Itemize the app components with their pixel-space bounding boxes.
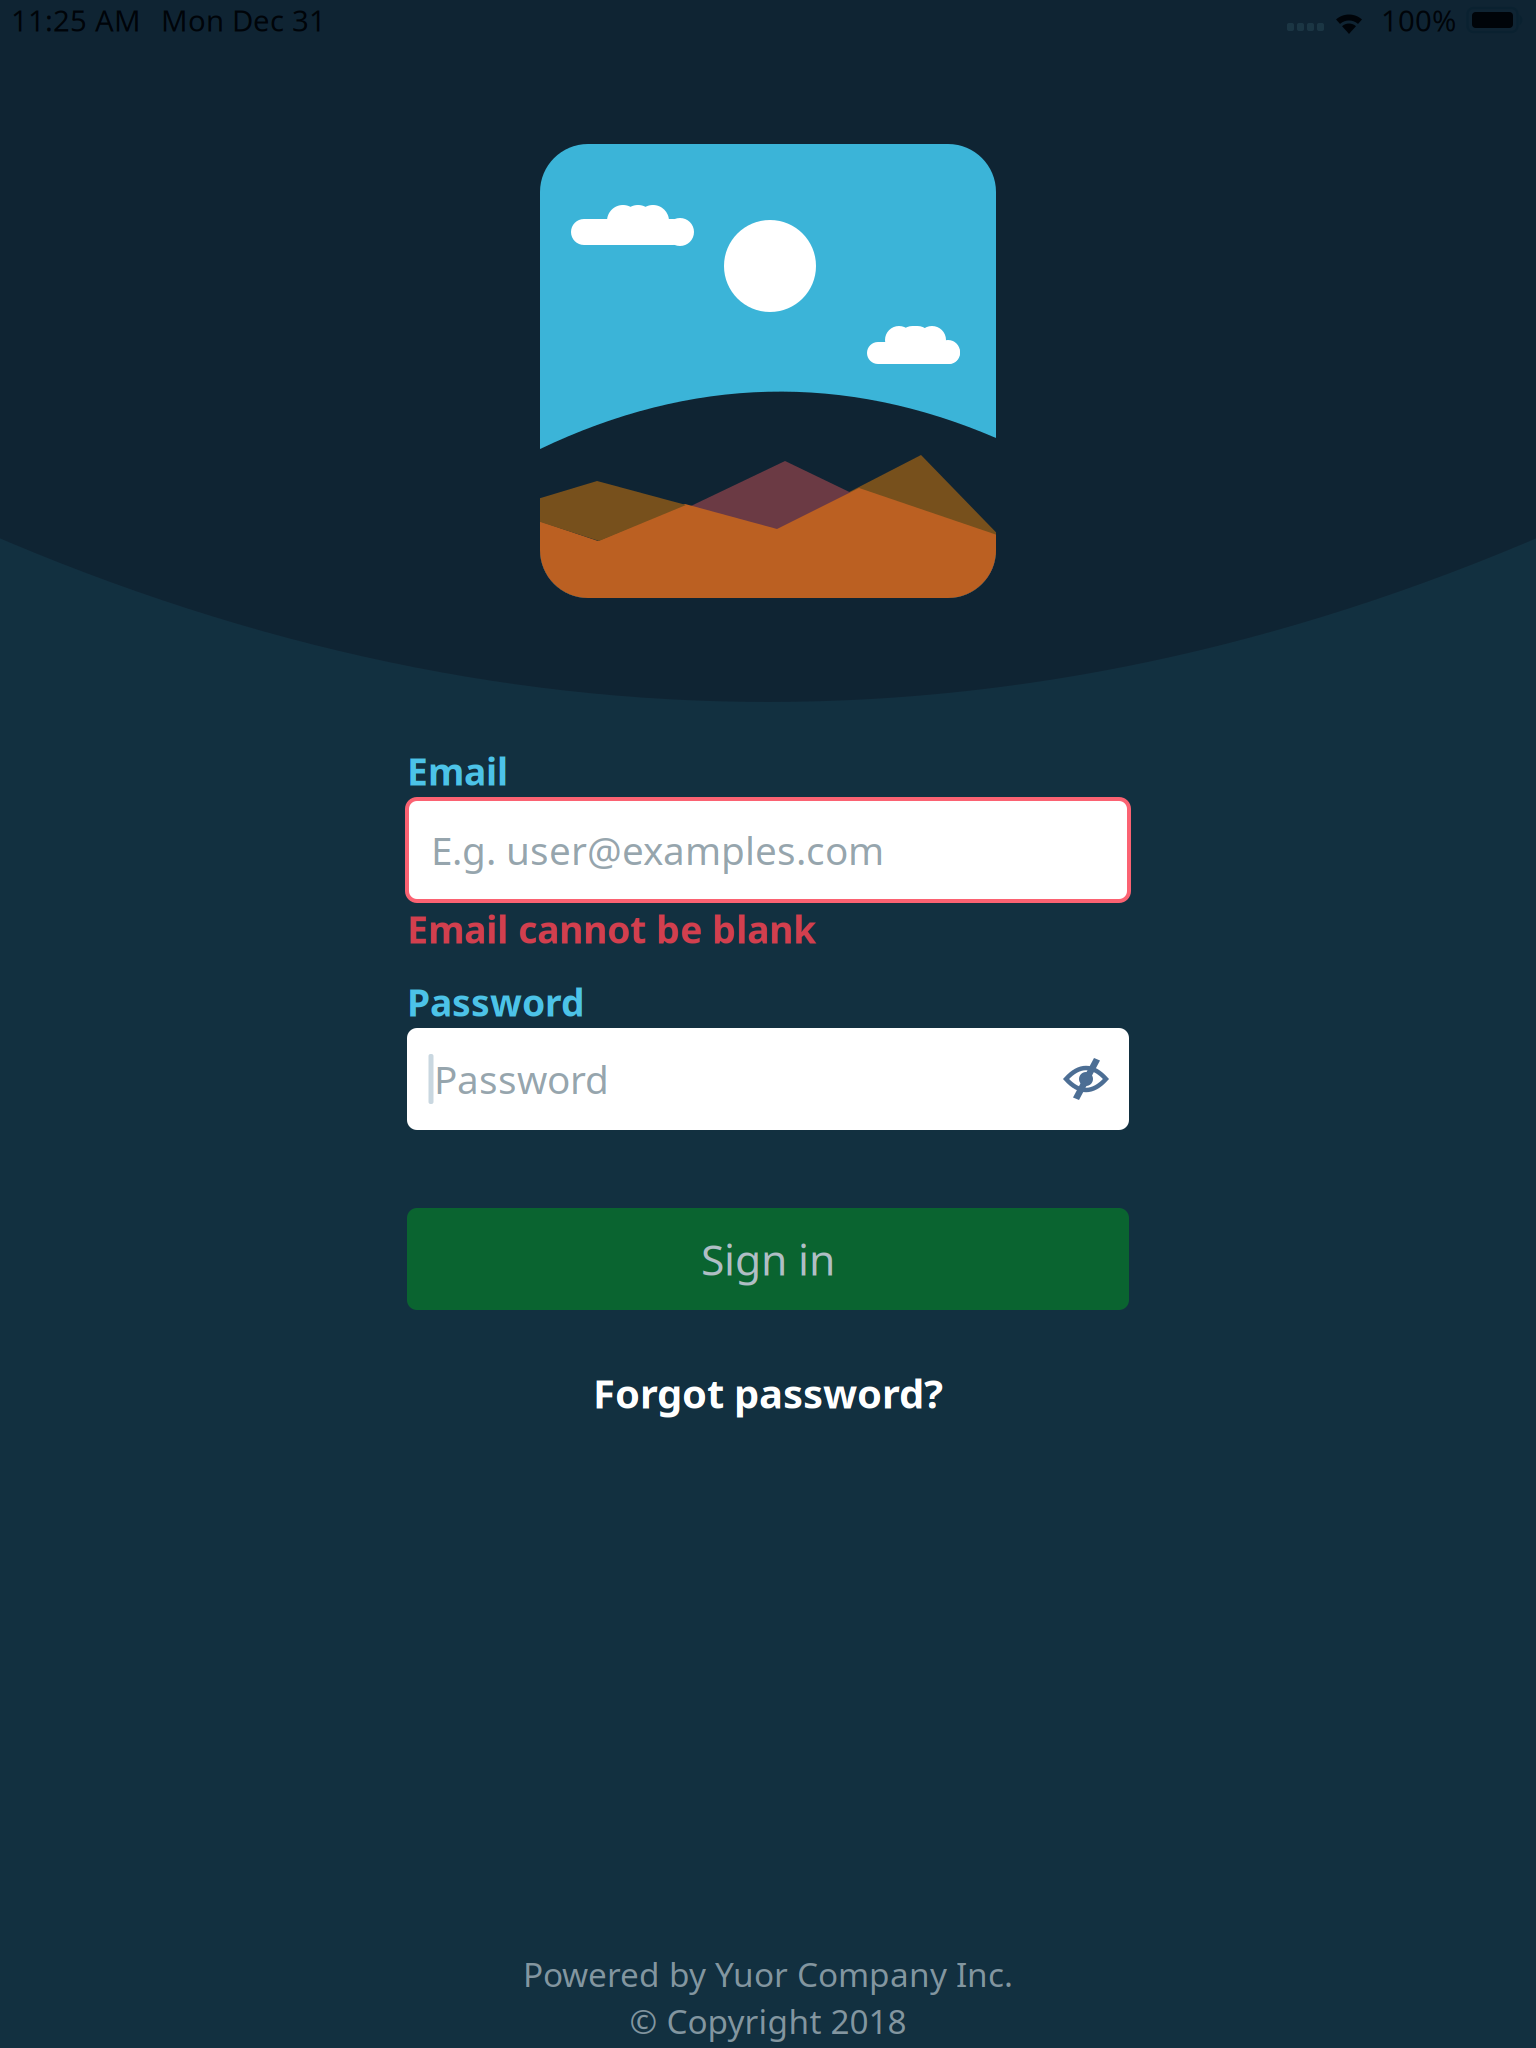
- staticText: Sign in: [701, 1231, 835, 1287]
- staticText: Forgot password?: [593, 1366, 943, 1419]
- staticText: Powered by Yuor Company Inc.: [523, 1952, 1013, 1996]
- staticText: Password: [434, 1053, 609, 1105]
- staticText: Password: [407, 977, 585, 1027]
- staticText: E.g. user@examples.com: [431, 824, 884, 876]
- button[interactable]: Sign in: [407, 1208, 1129, 1310]
- staticText: Email cannot be blank: [407, 904, 816, 954]
- staticText: © Copyright 2018: [629, 1999, 906, 2043]
- button[interactable]: Show password: [1060, 1055, 1112, 1103]
- button[interactable]: Forgot password?: [407, 1359, 1129, 1427]
- staticText: 11:25 AM: [11, 0, 141, 39]
- button[interactable]: Email, E.g. user@examples.com: [407, 799, 1129, 901]
- staticText: Email: [407, 746, 508, 796]
- staticText: 100%: [1381, 0, 1456, 39]
- staticText: Mon Dec 31: [161, 0, 326, 39]
